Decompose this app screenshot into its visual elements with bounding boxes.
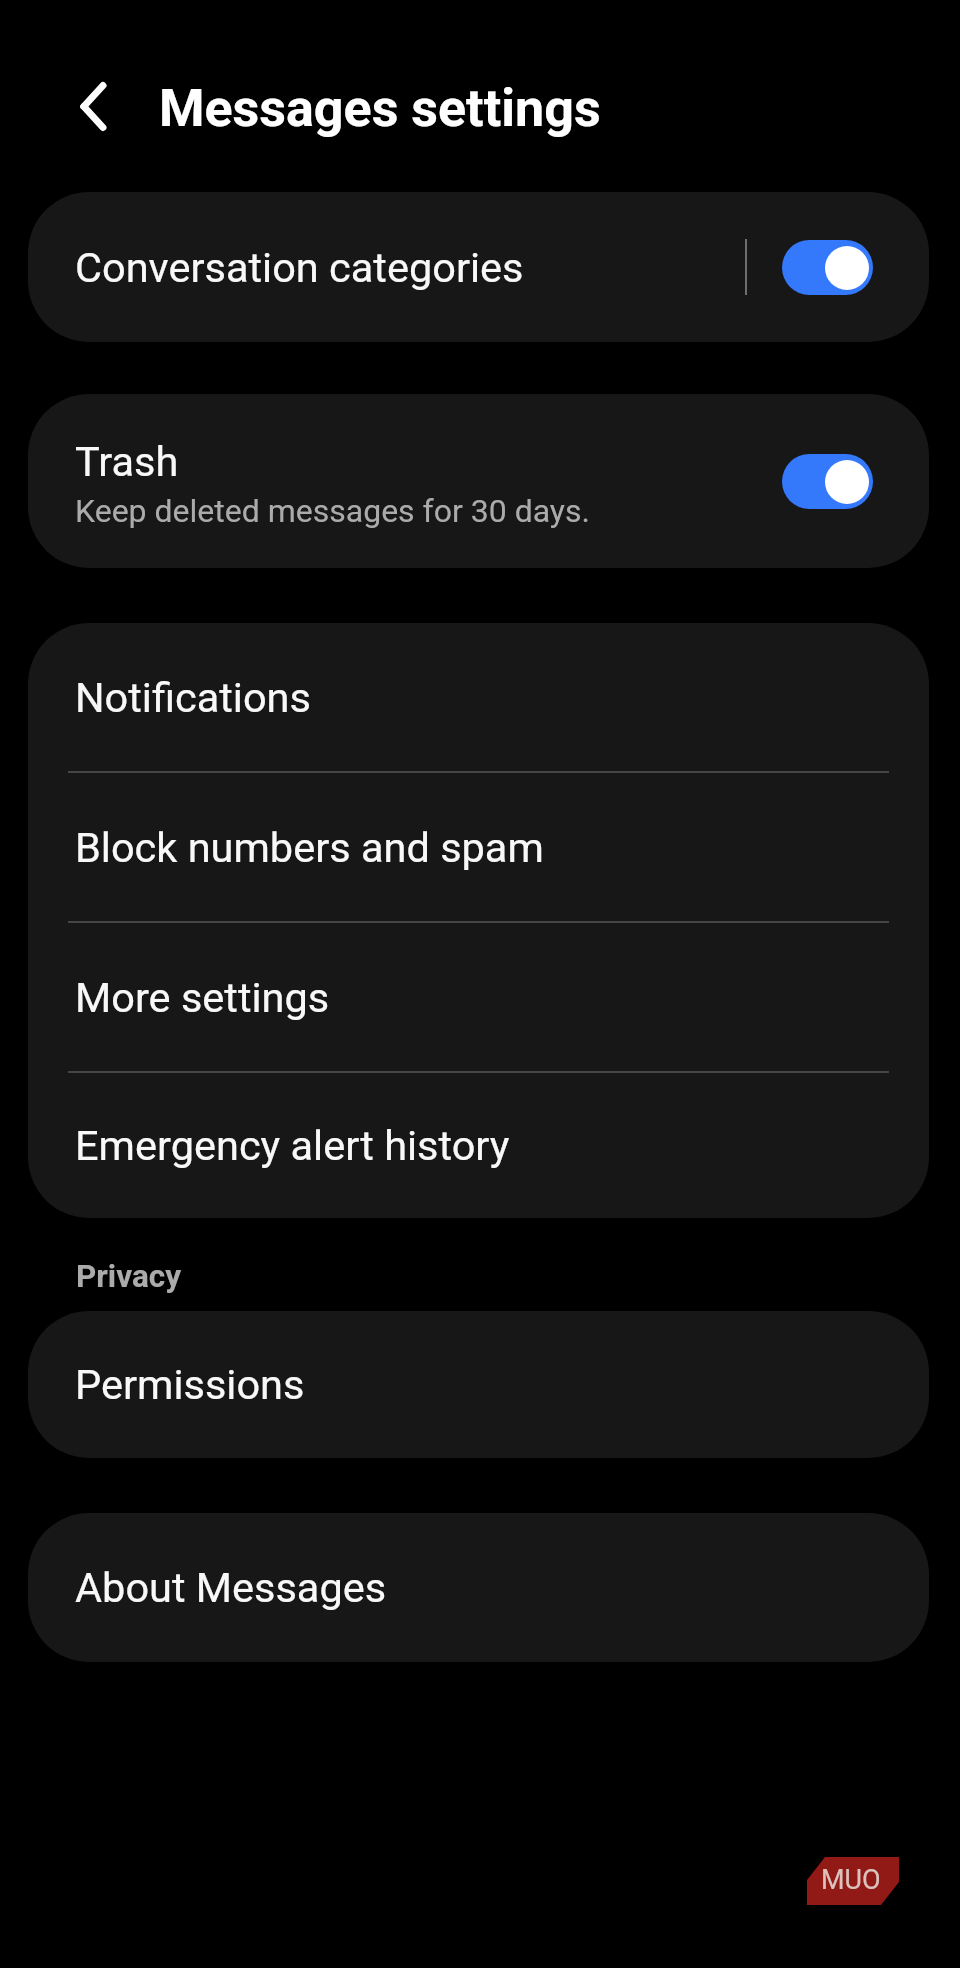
staticText: Emergency alert history [75, 1121, 510, 1170]
button[interactable]: Trash [782, 454, 873, 509]
staticText: Block numbers and spam [75, 823, 544, 872]
button[interactable]: Conversation categories [28, 192, 929, 342]
button[interactable]: Emergency alert history [28, 1073, 929, 1218]
staticText: Messages settings [159, 78, 601, 139]
staticText: Privacy [76, 1258, 182, 1295]
button[interactable]: Back [60, 71, 130, 141]
staticText: Permissions [75, 1360, 305, 1409]
button[interactable]: About Messages [28, 1513, 929, 1662]
button[interactable]: Trash [28, 394, 929, 568]
staticText: MUO [821, 1864, 881, 1896]
staticText: More settings [75, 973, 330, 1022]
staticText: Conversation categories [75, 243, 524, 292]
staticText: Trash [75, 437, 179, 486]
button[interactable]: Permissions [28, 1311, 929, 1458]
button[interactable]: Notifications [28, 623, 929, 771]
staticText: Keep deleted messages for 30 days. [75, 492, 590, 530]
staticText: Notifications [75, 673, 311, 722]
button[interactable]: Block numbers and spam [28, 773, 929, 921]
button[interactable]: Conversation categories [782, 240, 873, 295]
staticText: About Messages [75, 1563, 387, 1612]
button[interactable]: More settings [28, 923, 929, 1071]
